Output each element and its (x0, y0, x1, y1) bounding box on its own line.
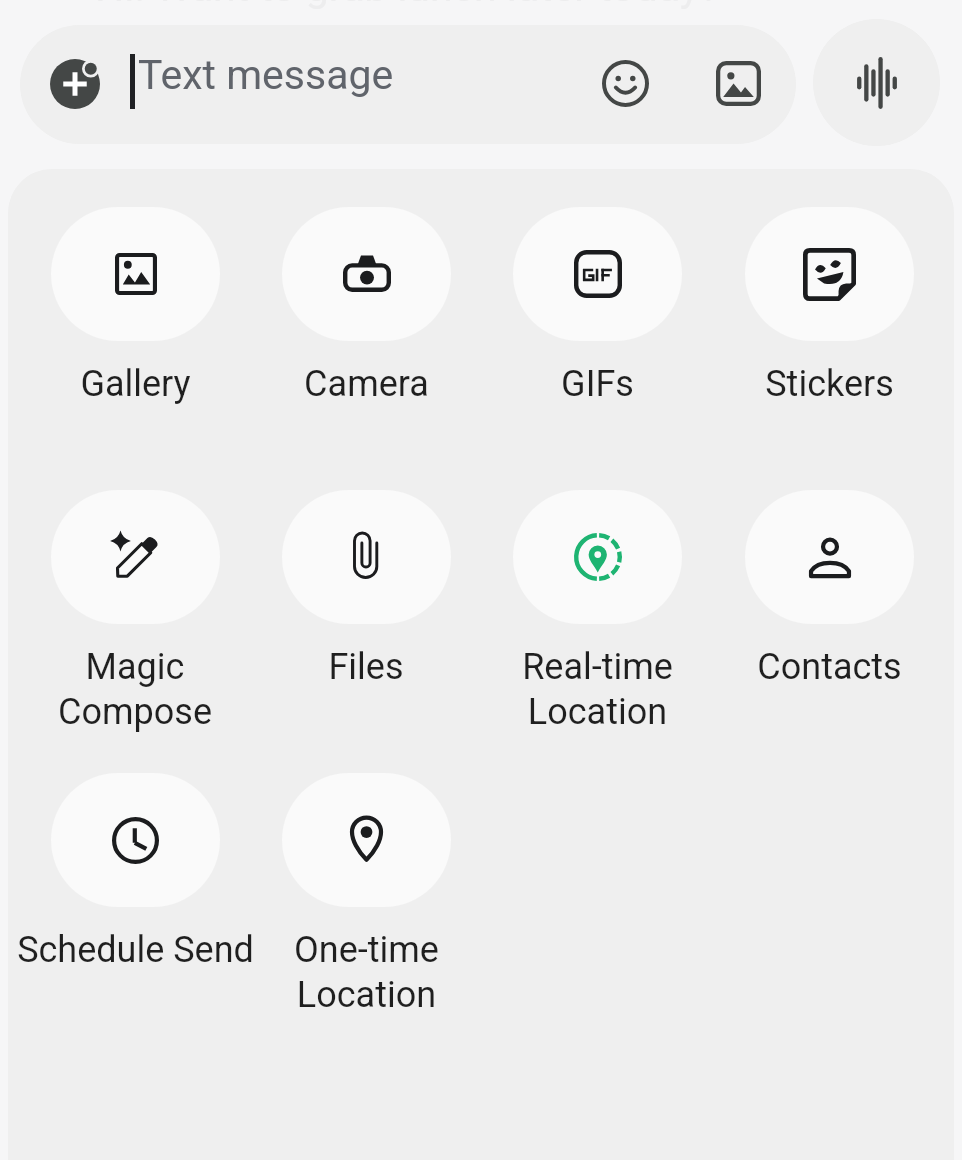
button[interactable]: Gallery (0, 207, 365, 405)
button[interactable]: One-time Location (136, 773, 596, 1016)
staticText: Magic Compose (58, 646, 212, 733)
staticText: Camera (304, 363, 429, 405)
button[interactable]: Record voice message (813, 19, 940, 146)
button[interactable]: Contacts (599, 490, 962, 688)
staticText: Files (328, 646, 404, 688)
button[interactable]: Real-time Location (367, 490, 827, 733)
staticText: Real-time Location (522, 646, 673, 733)
button[interactable]: Files (136, 490, 596, 688)
button[interactable]: Add attachment (50, 59, 100, 109)
button[interactable]: Add attachment (20, 25, 796, 144)
staticText: GIFs (561, 363, 634, 405)
staticText: Schedule Send (17, 929, 254, 971)
button[interactable]: Stickers (599, 207, 962, 405)
button[interactable]: Schedule Send (0, 773, 365, 971)
staticText: Contacts (757, 646, 902, 688)
button[interactable]: GIFs (367, 207, 827, 405)
button[interactable]: Send image (691, 36, 785, 130)
staticText: Stickers (765, 363, 894, 405)
staticText: One-time Location (294, 929, 439, 1016)
button[interactable]: Magic Compose (0, 490, 365, 733)
staticText: Text message (138, 51, 394, 99)
staticText: Gallery (80, 363, 191, 405)
button[interactable]: Emoji (578, 36, 672, 130)
button[interactable]: Camera (136, 207, 596, 405)
